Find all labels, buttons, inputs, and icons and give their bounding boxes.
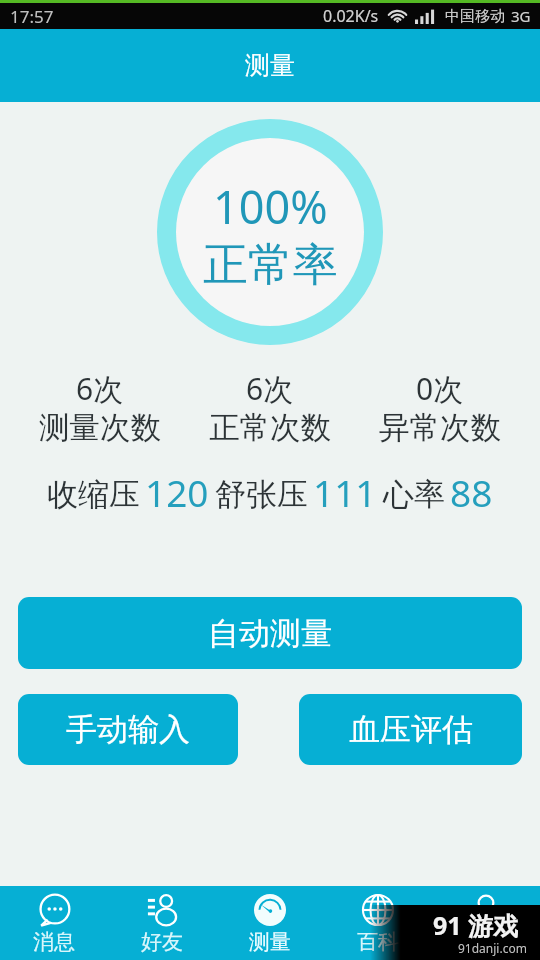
other: Measure [254, 894, 286, 926]
other: Encyclopedia [362, 894, 394, 926]
staticText: 血压评估 [349, 710, 473, 749]
other: Friends [146, 894, 178, 926]
staticText: 百科 [357, 929, 399, 955]
staticText: 100% [213, 176, 328, 237]
button[interactable]: 手动输入 [18, 694, 238, 765]
button[interactable]: Friends [108, 886, 216, 960]
button[interactable]: Messages [0, 886, 108, 960]
staticText: 3G [511, 6, 531, 26]
button[interactable]: 血压评估 [299, 694, 522, 765]
staticText: 0.02K/s [323, 5, 379, 27]
button[interactable]: 自动测量 [18, 597, 522, 669]
staticText: 舒张压 [215, 475, 308, 514]
staticText: 异常次数 [379, 409, 501, 447]
staticText: 测量 [249, 929, 291, 955]
staticText: 0次 [416, 368, 464, 409]
staticText: 正常次数 [209, 409, 331, 447]
staticText: 正常率 [203, 237, 338, 294]
staticText: 120 [145, 467, 209, 517]
staticText: 6次 [246, 368, 294, 409]
staticText: 测量次数 [39, 409, 161, 447]
staticText: 我的 [465, 929, 507, 955]
other: Profile [470, 894, 502, 926]
staticText: 自动测量 [208, 614, 332, 653]
button[interactable]: Encyclopedia [324, 886, 432, 960]
button[interactable]: Measure [216, 886, 324, 960]
staticText: 消息 [33, 929, 75, 955]
staticText: 111 [313, 467, 377, 517]
staticText: 中国移动 [445, 7, 505, 26]
staticText: 88 [450, 467, 493, 517]
staticText: 好友 [141, 929, 183, 955]
staticText: 测量 [245, 50, 295, 81]
staticText: 6次 [76, 368, 124, 409]
staticText: 91 游戏 [433, 908, 519, 942]
button[interactable]: Profile [432, 886, 540, 960]
other: Messages [38, 894, 70, 926]
staticText: 91danji.com [458, 940, 527, 956]
staticText: 17:57 [10, 5, 54, 28]
staticText: 手动输入 [66, 710, 190, 749]
staticText: 收缩压 [47, 475, 140, 514]
staticText: 心率 [383, 475, 445, 514]
